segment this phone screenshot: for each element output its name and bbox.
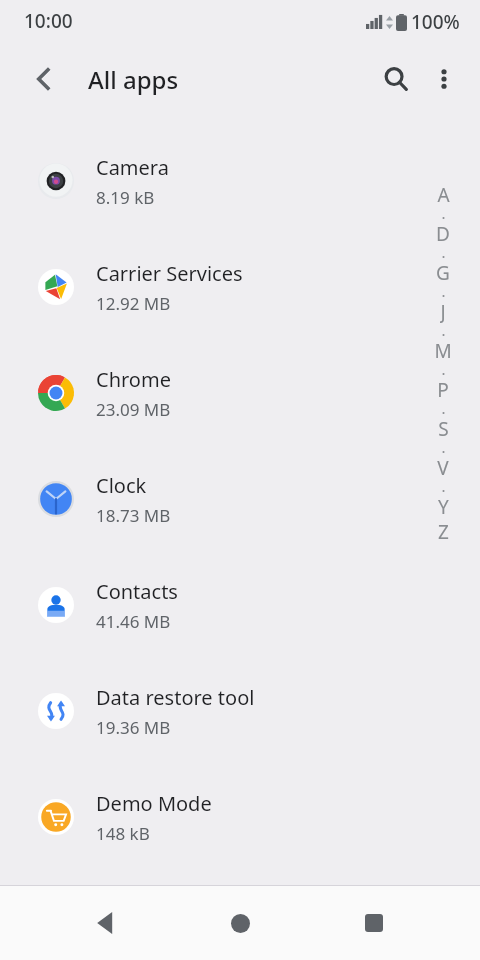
button[interactable]: Demo Mode <box>0 764 480 870</box>
staticText: 18.73 MB <box>96 504 171 527</box>
staticText: P <box>437 377 449 402</box>
staticText: All apps <box>88 63 179 96</box>
staticText: · <box>441 246 446 260</box>
staticText: · <box>441 363 446 377</box>
staticText: 100% <box>411 9 460 35</box>
button[interactable]: Data restore tool <box>0 658 480 764</box>
button[interactable]: Back <box>20 55 68 103</box>
staticText: 19.36 MB <box>96 716 171 739</box>
staticText: · <box>441 441 446 455</box>
staticText: M <box>434 338 452 363</box>
staticText: Contacts <box>96 578 178 605</box>
staticText: D <box>436 221 450 246</box>
staticText: J <box>440 299 446 324</box>
button[interactable]: More options <box>420 55 468 103</box>
staticText: · <box>441 207 446 221</box>
staticText: 148 kB <box>96 822 150 845</box>
staticText: G <box>436 260 450 285</box>
button[interactable]: Home <box>212 895 268 951</box>
staticText: Camera <box>96 154 169 181</box>
button[interactable]: Search <box>372 55 420 103</box>
button[interactable]: Back <box>78 895 134 951</box>
staticText: Demo Mode <box>96 790 212 817</box>
button[interactable]: Recent apps <box>346 895 402 951</box>
staticText: Clock <box>96 472 147 499</box>
staticText: Y <box>438 494 449 519</box>
staticText: 41.46 MB <box>96 610 171 633</box>
button[interactable]: Alphabet index <box>428 182 458 544</box>
staticText: 12.92 MB <box>96 292 171 315</box>
button[interactable]: Camera <box>0 128 480 234</box>
staticText: 23.09 MB <box>96 398 171 421</box>
staticText: V <box>437 455 449 480</box>
staticText: Z <box>438 519 449 544</box>
staticText: A <box>437 182 450 207</box>
staticText: · <box>441 480 446 494</box>
staticText: 8.19 kB <box>96 186 155 209</box>
staticText: Data restore tool <box>96 684 255 711</box>
button[interactable]: Chrome <box>0 340 480 446</box>
staticText: · <box>441 324 446 338</box>
staticText: · <box>441 402 446 416</box>
button[interactable]: Contacts <box>0 552 480 658</box>
staticText: Carrier Services <box>96 260 243 287</box>
staticText: Chrome <box>96 366 171 393</box>
button[interactable]: Clock <box>0 446 480 552</box>
button[interactable]: Carrier Services <box>0 234 480 340</box>
staticText: · <box>441 285 446 299</box>
staticText: S <box>438 416 449 441</box>
staticText: 10:00 <box>24 8 73 34</box>
